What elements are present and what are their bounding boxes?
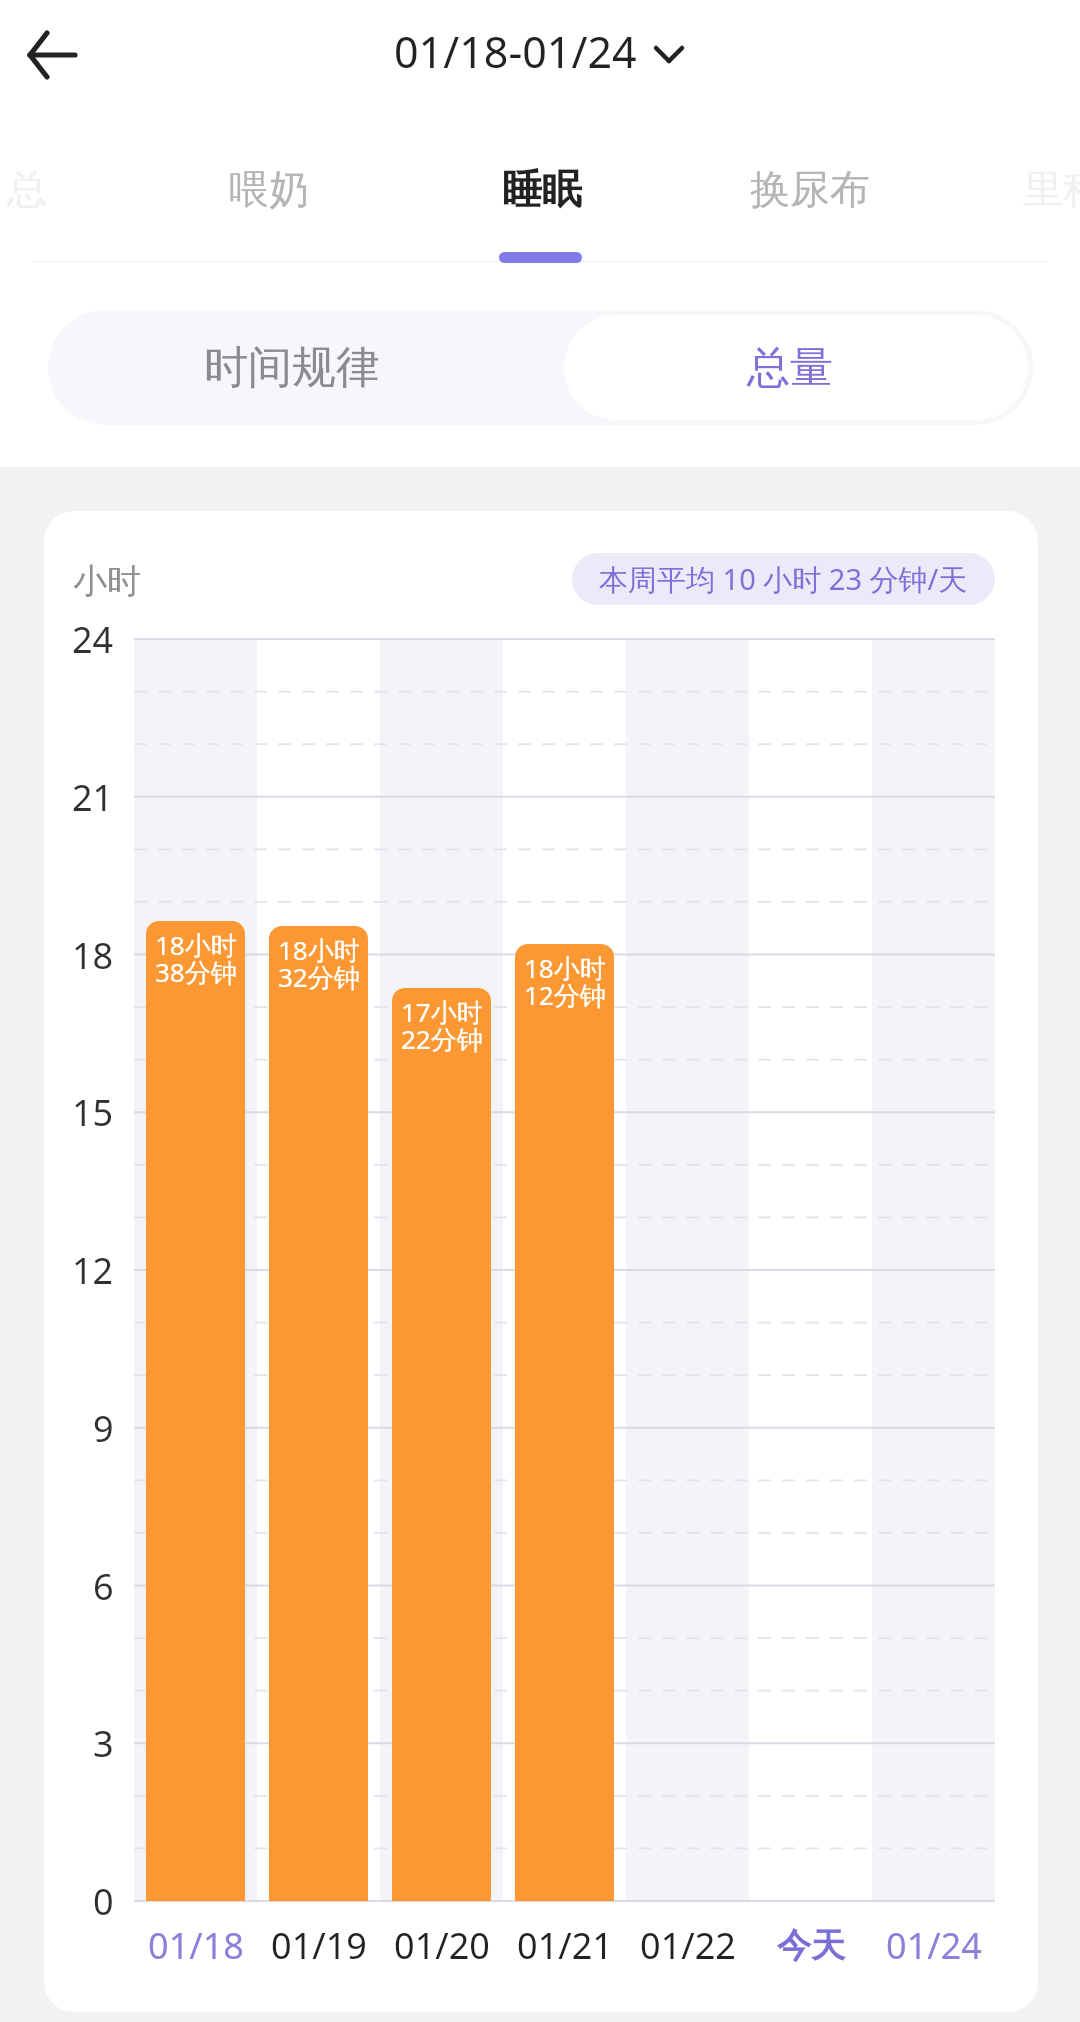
button[interactable]: Back: [10, 11, 94, 95]
staticText: 18小时: [278, 932, 360, 966]
staticText: 17小时: [401, 994, 483, 1028]
staticText: 21: [72, 773, 114, 822]
button[interactable]: 时间规律: [42, 310, 542, 425]
staticText: 3: [93, 1719, 114, 1768]
staticText: 总: [7, 164, 47, 214]
staticText: 24: [72, 615, 114, 664]
staticText: 小时: [73, 560, 141, 603]
staticText: 38分钟: [155, 954, 237, 988]
staticText: 0: [93, 1877, 114, 1926]
staticText: 18小时: [524, 950, 606, 984]
staticText: 换尿布: [750, 164, 870, 214]
staticText: 01/22: [640, 1921, 736, 1970]
staticText: 今天: [777, 1924, 845, 1967]
button[interactable]: 01/18-01/24: [394, 22, 687, 81]
staticText: 睡眠: [502, 164, 582, 214]
button[interactable]: 总量: [560, 313, 1020, 422]
button[interactable]: 睡眠: [412, 144, 672, 234]
staticText: 本周平均 10 小时 23 分钟/天: [599, 559, 968, 599]
staticText: 01/19: [271, 1921, 367, 1970]
staticText: 18小时: [155, 927, 237, 961]
staticText: 时间规律: [204, 340, 380, 395]
button[interactable]: 里程: [933, 144, 1080, 234]
button[interactable]: 喂奶: [139, 144, 399, 234]
staticText: 32分钟: [278, 959, 360, 993]
staticText: 01/21: [517, 1921, 613, 1970]
staticText: 里程: [1023, 164, 1080, 214]
staticText: 15: [72, 1088, 114, 1137]
staticText: 01/18: [148, 1921, 244, 1970]
staticText: 6: [93, 1562, 114, 1611]
staticText: 22分钟: [401, 1021, 483, 1055]
staticText: 12: [72, 1246, 114, 1295]
staticText: 12分钟: [524, 977, 606, 1011]
staticText: 18: [72, 931, 114, 980]
staticText: 9: [93, 1404, 114, 1453]
staticText: 01/20: [394, 1921, 490, 1970]
staticText: 01/18-01/24: [394, 22, 637, 81]
staticText: 总量: [747, 341, 833, 395]
staticText: 喂奶: [229, 164, 309, 214]
button[interactable]: 换尿布: [680, 144, 940, 234]
staticText: 01/24: [886, 1921, 982, 1970]
